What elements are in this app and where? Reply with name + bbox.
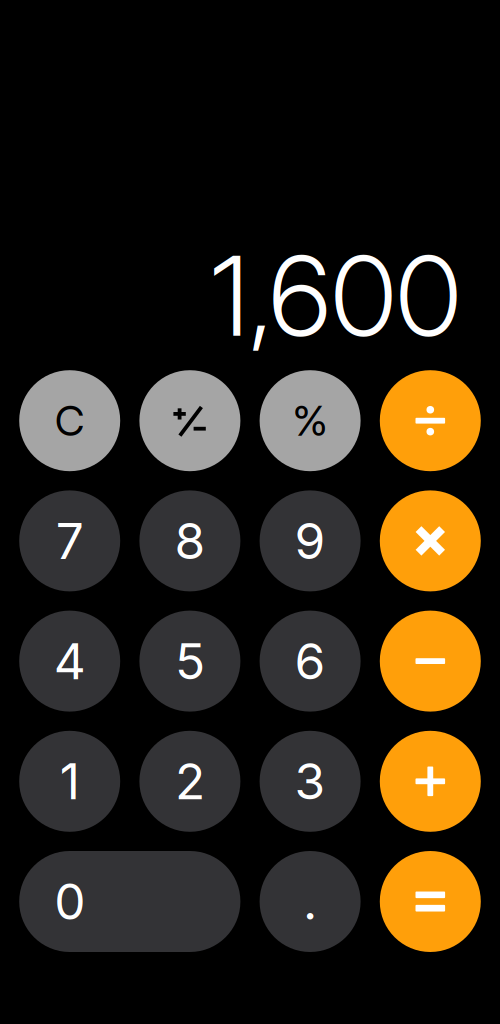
button[interactable]: Plus or minus — [139, 370, 240, 471]
button[interactable]: C — [19, 370, 120, 471]
button[interactable]: 2 — [139, 731, 240, 832]
staticText: 1,600 — [211, 230, 461, 362]
button[interactable]: 3 — [260, 731, 361, 832]
button[interactable]: 9 — [260, 490, 361, 591]
button[interactable]: . — [260, 851, 361, 952]
button[interactable]: Divide — [380, 370, 481, 471]
staticText: 0 — [54, 871, 85, 931]
button[interactable]: Equals — [380, 851, 481, 952]
button[interactable]: Subtract — [380, 611, 481, 712]
staticText: 8 — [174, 511, 205, 571]
staticText: % — [293, 396, 328, 446]
staticText: 1 — [60, 751, 80, 811]
staticText: . — [303, 871, 317, 931]
button[interactable]: 0 — [19, 851, 240, 952]
button[interactable]: 8 — [139, 490, 240, 591]
button[interactable]: Multiply — [380, 490, 481, 591]
staticText: 2 — [175, 751, 205, 811]
button[interactable]: 1 — [19, 731, 120, 832]
button[interactable]: 4 — [19, 611, 120, 712]
staticText: C — [55, 396, 85, 446]
staticText: 9 — [295, 511, 326, 571]
staticText: 4 — [54, 631, 86, 691]
staticText: 5 — [175, 631, 205, 691]
staticText: 7 — [56, 511, 84, 571]
button[interactable]: 6 — [260, 611, 361, 712]
button[interactable]: Add — [380, 731, 481, 832]
button[interactable]: 5 — [139, 611, 240, 712]
staticText: 3 — [295, 751, 326, 811]
button[interactable]: 7 — [19, 490, 120, 591]
button[interactable]: % — [260, 370, 361, 471]
staticText: 6 — [295, 631, 326, 691]
